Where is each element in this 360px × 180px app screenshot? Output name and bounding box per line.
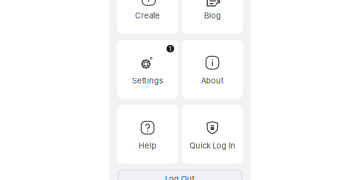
button[interactable]: Help	[117, 105, 178, 163]
button[interactable]: Log Out	[118, 170, 242, 180]
staticText: 1	[169, 45, 172, 53]
button[interactable]: Blog	[182, 0, 243, 33]
button[interactable]: Quick Log In	[182, 105, 243, 163]
staticText: Create	[135, 11, 160, 20]
staticText: Settings	[132, 76, 163, 85]
staticText: Log Out	[165, 174, 195, 180]
button[interactable]: About	[182, 40, 243, 98]
staticText: About	[201, 76, 224, 85]
button[interactable]: Create	[117, 0, 178, 33]
button[interactable]: Settings	[117, 40, 178, 98]
staticText: Blog	[204, 11, 221, 20]
staticText: Quick Log In	[189, 141, 235, 150]
staticText: Help	[139, 141, 157, 150]
